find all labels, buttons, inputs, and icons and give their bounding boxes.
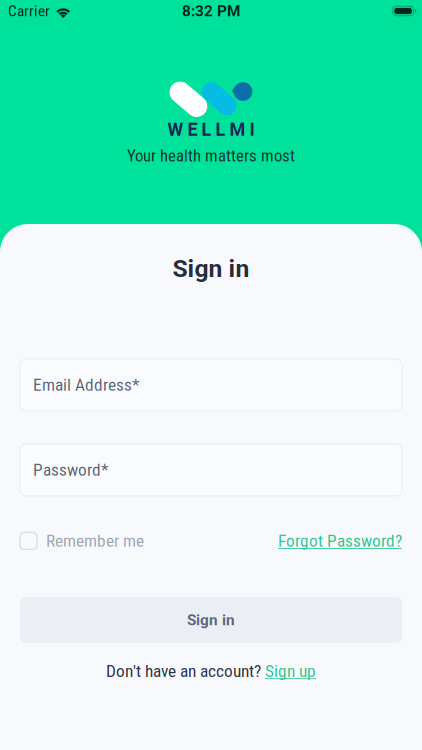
staticText: Sign in xyxy=(172,254,249,283)
staticText: Sign in xyxy=(187,611,235,629)
button[interactable]: Remember me xyxy=(20,529,144,553)
staticText: Password* xyxy=(33,460,108,480)
button[interactable]: Sign in xyxy=(20,597,402,643)
staticText: W E L L M I xyxy=(167,119,254,140)
staticText: Don't have an account? xyxy=(106,661,261,681)
staticText: Sign up xyxy=(265,661,316,681)
staticText: Carrier xyxy=(8,2,50,20)
staticText: Email Address* xyxy=(33,375,139,395)
staticText: Forgot Password? xyxy=(278,531,402,551)
button[interactable]: Forgot Password? xyxy=(278,529,402,553)
staticText: Remember me xyxy=(46,531,144,551)
staticText: Your health matters most xyxy=(127,146,295,166)
button[interactable]: Sign up xyxy=(265,661,316,681)
staticText: 8:32 PM xyxy=(182,2,240,20)
